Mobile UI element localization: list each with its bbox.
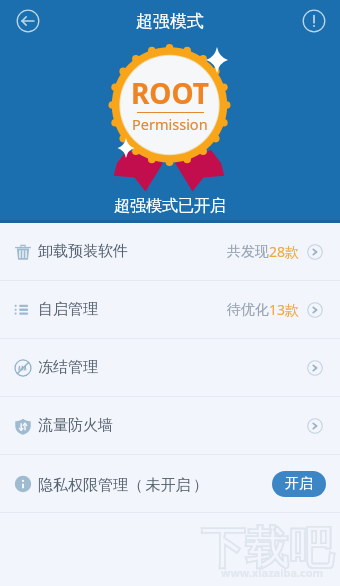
staticText: 共发现 bbox=[227, 243, 269, 261]
staticText: ROOT bbox=[131, 74, 209, 112]
staticText: www.xiazaiba.com bbox=[221, 565, 324, 580]
button[interactable]: 自启管理 bbox=[0, 281, 340, 338]
button[interactable]: 隐私权限管理（ 未开启 ） bbox=[0, 455, 340, 512]
staticText: 冻结管理 bbox=[38, 358, 98, 377]
staticText: 开启 bbox=[285, 475, 313, 493]
button[interactable]: 冻结管理 bbox=[0, 339, 340, 396]
staticText: 超强模式 bbox=[136, 11, 204, 32]
staticText: 下载吧 bbox=[201, 521, 333, 576]
staticText: 13款 bbox=[269, 300, 300, 319]
staticText: Permission bbox=[132, 114, 208, 134]
staticText: 卸载预装软件 bbox=[38, 242, 128, 261]
staticText: 流量防火墙 bbox=[38, 416, 113, 435]
button[interactable]: 卸载预装软件 bbox=[0, 223, 340, 280]
button[interactable]: Info bbox=[302, 9, 326, 33]
button[interactable]: 流量防火墙 bbox=[0, 397, 340, 454]
staticText: 超强模式已开启 bbox=[114, 196, 226, 216]
button[interactable]: Back bbox=[16, 9, 40, 33]
staticText: 自启管理 bbox=[38, 300, 98, 319]
staticText: 隐私权限管理（ 未开启 ） bbox=[38, 474, 208, 494]
staticText: 待优化 bbox=[227, 301, 269, 319]
staticText: 28款 bbox=[269, 242, 300, 261]
button[interactable]: 开启 bbox=[272, 471, 326, 497]
